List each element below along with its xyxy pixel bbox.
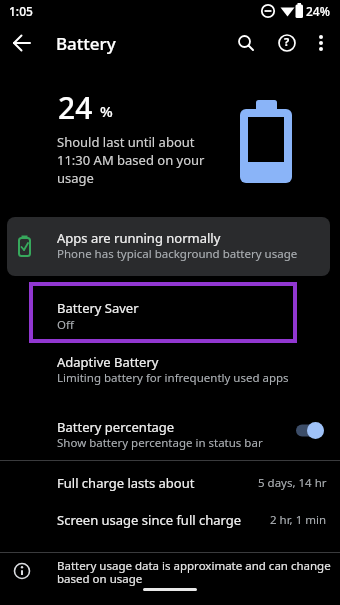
staticText: Adaptive Battery [57, 353, 159, 371]
staticText: Battery percentage [57, 418, 175, 436]
staticText: 1:05 [9, 3, 33, 19]
staticText: 2 hr, 1 min [270, 512, 327, 528]
staticText: Limiting battery for infrequently used a… [57, 370, 289, 386]
button[interactable]: Battery Saver [0, 284, 340, 342]
staticText: Battery [56, 32, 116, 55]
staticText: 24% [306, 3, 330, 19]
button[interactable] [305, 27, 337, 59]
button[interactable]: ? [271, 27, 303, 59]
staticText: Screen usage since full charge [57, 511, 242, 529]
staticText: Full charge lasts about [57, 474, 195, 492]
staticText: Phone has typical background battery usa… [57, 246, 298, 262]
staticText: % [100, 101, 113, 121]
button[interactable]: Full charge lasts about [0, 468, 340, 498]
staticText: ? [284, 34, 290, 49]
staticText: Should last until about 11:30 AM based o… [57, 133, 205, 187]
button[interactable]: Screen usage since full charge [0, 505, 340, 535]
button[interactable]: Adaptive Battery [0, 345, 340, 390]
button[interactable] [6, 27, 38, 59]
button[interactable]: Apps are running normally [7, 217, 330, 276]
button[interactable]: Battery percentage [0, 408, 340, 453]
button[interactable] [230, 27, 262, 59]
staticText: 5 days, 14 hr [258, 475, 327, 491]
staticText: Off [57, 317, 74, 333]
staticText: 24 [58, 87, 93, 128]
staticText: Battery Saver [57, 299, 139, 317]
staticText: Apps are running normally [57, 229, 221, 247]
staticText: Show battery percentage in status bar [57, 435, 263, 451]
staticText: Battery usage data is approximate and ca… [57, 558, 331, 586]
